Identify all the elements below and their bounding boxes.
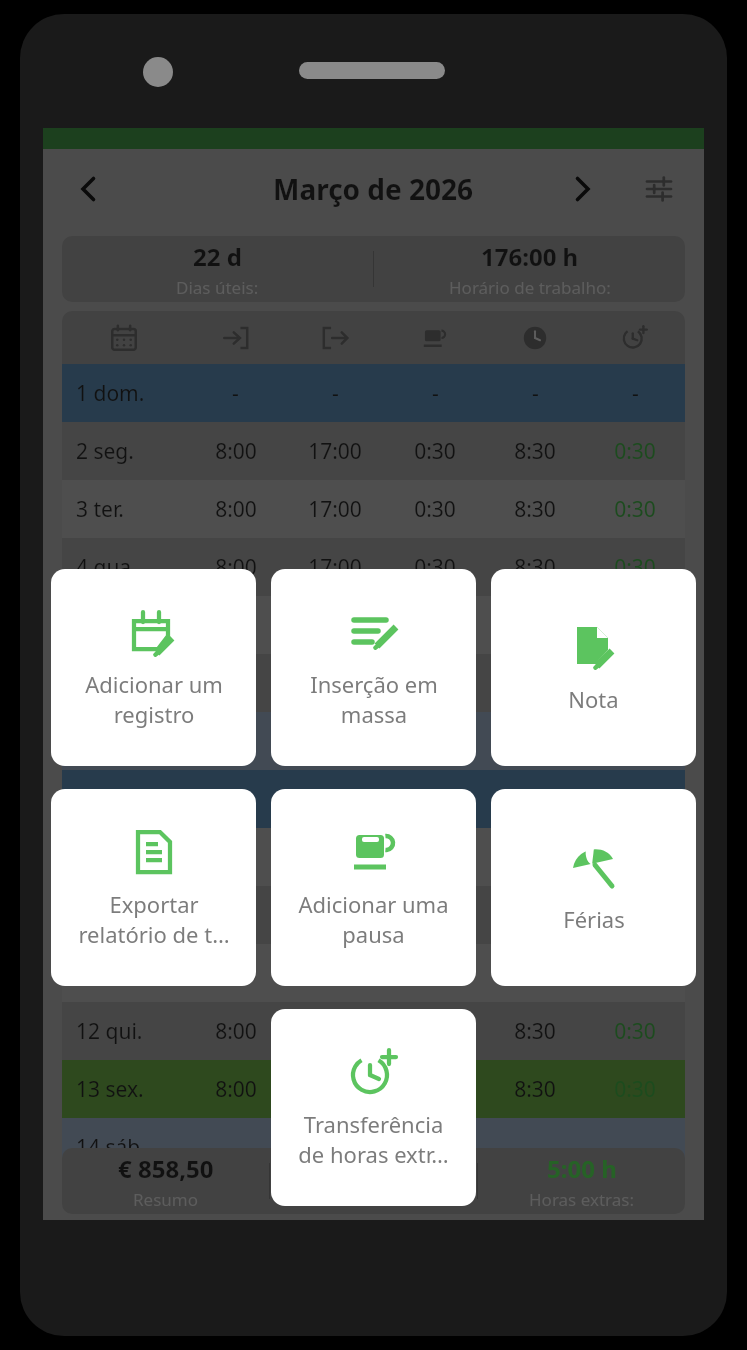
staticText: Adicionar um registro bbox=[85, 669, 223, 729]
staticText: 8:00 bbox=[215, 843, 257, 872]
button[interactable]: Adicionar um registro bbox=[51, 569, 256, 766]
staticText: 17:00 bbox=[308, 437, 362, 466]
staticText: 14 sáb. bbox=[76, 1133, 186, 1162]
staticText: 8:00 bbox=[215, 553, 257, 582]
staticText: 8:00 bbox=[215, 1017, 257, 1046]
staticText: - bbox=[432, 785, 439, 814]
button[interactable]: 10 ter. bbox=[62, 886, 685, 944]
button[interactable]: 14 sáb. bbox=[62, 1118, 685, 1176]
button[interactable]: 3 ter. bbox=[62, 480, 685, 538]
staticText: 10 ter. bbox=[76, 901, 186, 930]
staticText: 8:30 bbox=[514, 437, 556, 466]
staticText: - bbox=[332, 785, 339, 814]
button[interactable]: 9 seg. bbox=[62, 828, 685, 886]
staticText: - bbox=[232, 785, 239, 814]
staticText: 0:30 bbox=[614, 495, 656, 524]
staticText: - bbox=[332, 1133, 339, 1162]
staticText: Horas extras: bbox=[529, 1188, 634, 1211]
staticText: Março de 2026 bbox=[273, 170, 474, 208]
staticText: 9 seg. bbox=[76, 843, 186, 872]
button[interactable]: 7 sáb. bbox=[62, 712, 685, 770]
button[interactable]: 6 sex. bbox=[62, 654, 685, 712]
staticText: - bbox=[232, 1133, 239, 1162]
staticText: 0:30 bbox=[414, 669, 456, 698]
button[interactable]: Previous month bbox=[63, 163, 115, 215]
staticText: - bbox=[632, 379, 639, 408]
staticText: 8:00 bbox=[215, 959, 257, 988]
button[interactable]: Inserção em massa bbox=[271, 569, 476, 766]
button[interactable]: Nota bbox=[491, 569, 696, 766]
button[interactable]: 4 qua. bbox=[62, 538, 685, 596]
staticText: 0:30 bbox=[614, 1017, 656, 1046]
staticText: 8:00 bbox=[215, 437, 257, 466]
button[interactable]: 1 dom. bbox=[62, 364, 685, 422]
staticText: 8 dom. bbox=[76, 785, 186, 814]
staticText: - bbox=[332, 379, 339, 408]
staticText: 0:30 bbox=[614, 553, 656, 582]
staticText: 0:30 bbox=[614, 669, 656, 698]
staticText: € 858,50 bbox=[118, 1152, 214, 1185]
staticText: 0:00 h bbox=[339, 1152, 409, 1185]
button[interactable]: 13 sex. bbox=[62, 1060, 685, 1118]
staticText: 8:00 bbox=[215, 1075, 257, 1104]
button[interactable]: Férias bbox=[491, 789, 696, 986]
staticText: 4 qua. bbox=[76, 553, 186, 582]
staticText: 0:30 bbox=[414, 495, 456, 524]
staticText: - bbox=[632, 785, 639, 814]
staticText: 17:00 bbox=[308, 553, 362, 582]
staticText: 1 dom. bbox=[76, 379, 186, 408]
staticText: Nota bbox=[568, 684, 619, 714]
staticText: Inserção em massa bbox=[310, 669, 438, 729]
staticText: Horário de trabalho: bbox=[449, 276, 611, 299]
staticText: 8:00 bbox=[215, 495, 257, 524]
button[interactable]: Transferência de horas extr… bbox=[271, 1009, 476, 1206]
staticText: Transferência de horas extr… bbox=[298, 1109, 449, 1169]
staticText: Dias úteis: bbox=[176, 276, 259, 299]
staticText: 176:00 h bbox=[481, 240, 579, 273]
staticText: 8:30 bbox=[514, 1075, 556, 1104]
staticText: 0:30 bbox=[414, 959, 456, 988]
button[interactable]: Exportar relatório de t… bbox=[51, 789, 256, 986]
staticText: 17:00 bbox=[308, 495, 362, 524]
button[interactable]: € 858,50 bbox=[62, 1148, 685, 1214]
staticText: 8:00 bbox=[215, 901, 257, 930]
staticText: 0:30 bbox=[614, 437, 656, 466]
staticText: - bbox=[632, 1133, 639, 1162]
staticText: 17:00 bbox=[308, 901, 362, 930]
staticText: 6 sex. bbox=[76, 669, 186, 698]
button[interactable]: Next month bbox=[556, 163, 608, 215]
button[interactable]: 12 qui. bbox=[62, 1002, 685, 1060]
staticText: 0:30 bbox=[614, 1075, 656, 1104]
staticText: 0:30 bbox=[614, 959, 656, 988]
button[interactable]: Filter settings bbox=[633, 163, 685, 215]
button[interactable]: 22 d bbox=[62, 236, 685, 302]
staticText: 2 seg. bbox=[76, 437, 186, 466]
button[interactable]: 2 seg. bbox=[62, 422, 685, 480]
staticText: - bbox=[532, 785, 539, 814]
staticText: 17:00 bbox=[308, 669, 362, 698]
button[interactable]: 5 qui. bbox=[62, 596, 685, 654]
staticText: 22 d bbox=[193, 240, 242, 273]
button[interactable]: Adicionar uma pausa bbox=[271, 789, 476, 986]
staticText: 0:30 bbox=[414, 901, 456, 930]
button[interactable]: 8 dom. bbox=[62, 770, 685, 828]
staticText: 0:30 bbox=[414, 553, 456, 582]
staticText: Saldo bbox=[352, 1188, 396, 1211]
staticText: - bbox=[432, 1133, 439, 1162]
staticText: 3 ter. bbox=[76, 495, 186, 524]
button[interactable]: 11 qua. bbox=[62, 944, 685, 1002]
staticText: Férias bbox=[563, 904, 625, 934]
staticText: 7 sáb. bbox=[76, 727, 186, 756]
staticText: Resumo bbox=[133, 1188, 198, 1211]
staticText: Adicionar uma pausa bbox=[298, 889, 449, 949]
